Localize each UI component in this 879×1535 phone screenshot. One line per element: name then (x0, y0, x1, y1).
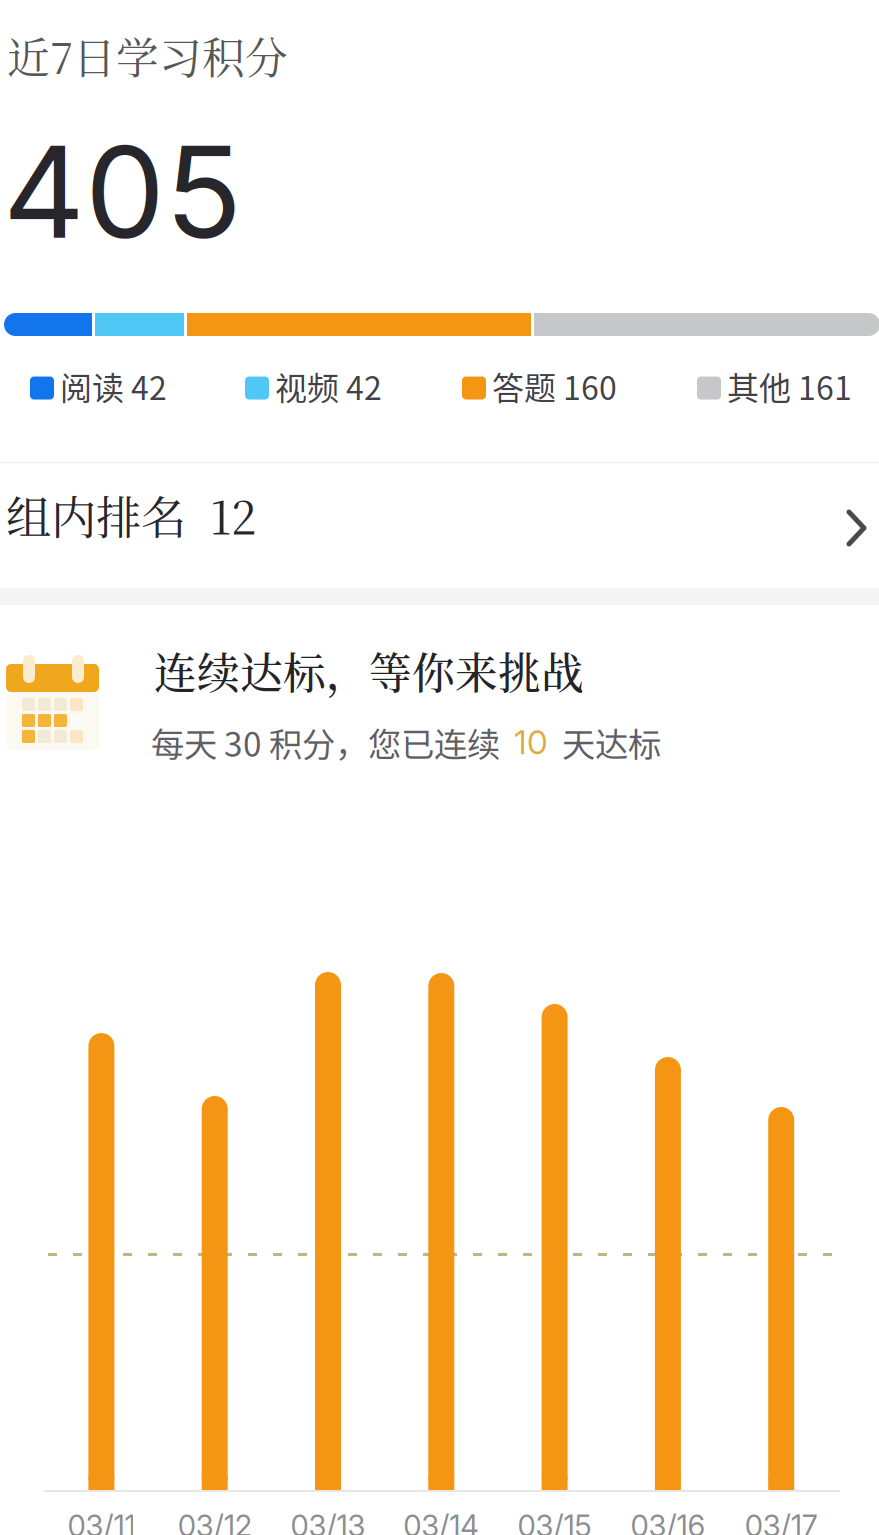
staticText: 10 (514, 722, 548, 762)
staticText: 其他 161 (727, 363, 852, 409)
button[interactable]: 组内排名 12 (0, 452, 879, 578)
staticText: 每天 30 积分，您已连续 (151, 718, 514, 766)
staticText: 视频 42 (275, 363, 382, 409)
staticText: 03/17 (745, 1508, 818, 1535)
staticText: 03/13 (290, 1508, 365, 1535)
staticText: 405 (3, 115, 242, 268)
staticText: 近7日学习积分 (7, 25, 288, 86)
staticText: 阅读 42 (60, 363, 167, 409)
staticText: 03/14 (403, 1508, 479, 1535)
staticText: 03/11 (67, 1508, 135, 1535)
staticText: 03/12 (178, 1508, 252, 1535)
staticText: 组内排名 12 (6, 482, 256, 547)
staticText: 03/15 (518, 1508, 592, 1535)
staticText: 03/16 (630, 1508, 705, 1535)
staticText: 天达标 (548, 718, 661, 766)
staticText: 连续达标，等你来挑战 (154, 640, 584, 701)
staticText: 答题 160 (492, 363, 617, 409)
